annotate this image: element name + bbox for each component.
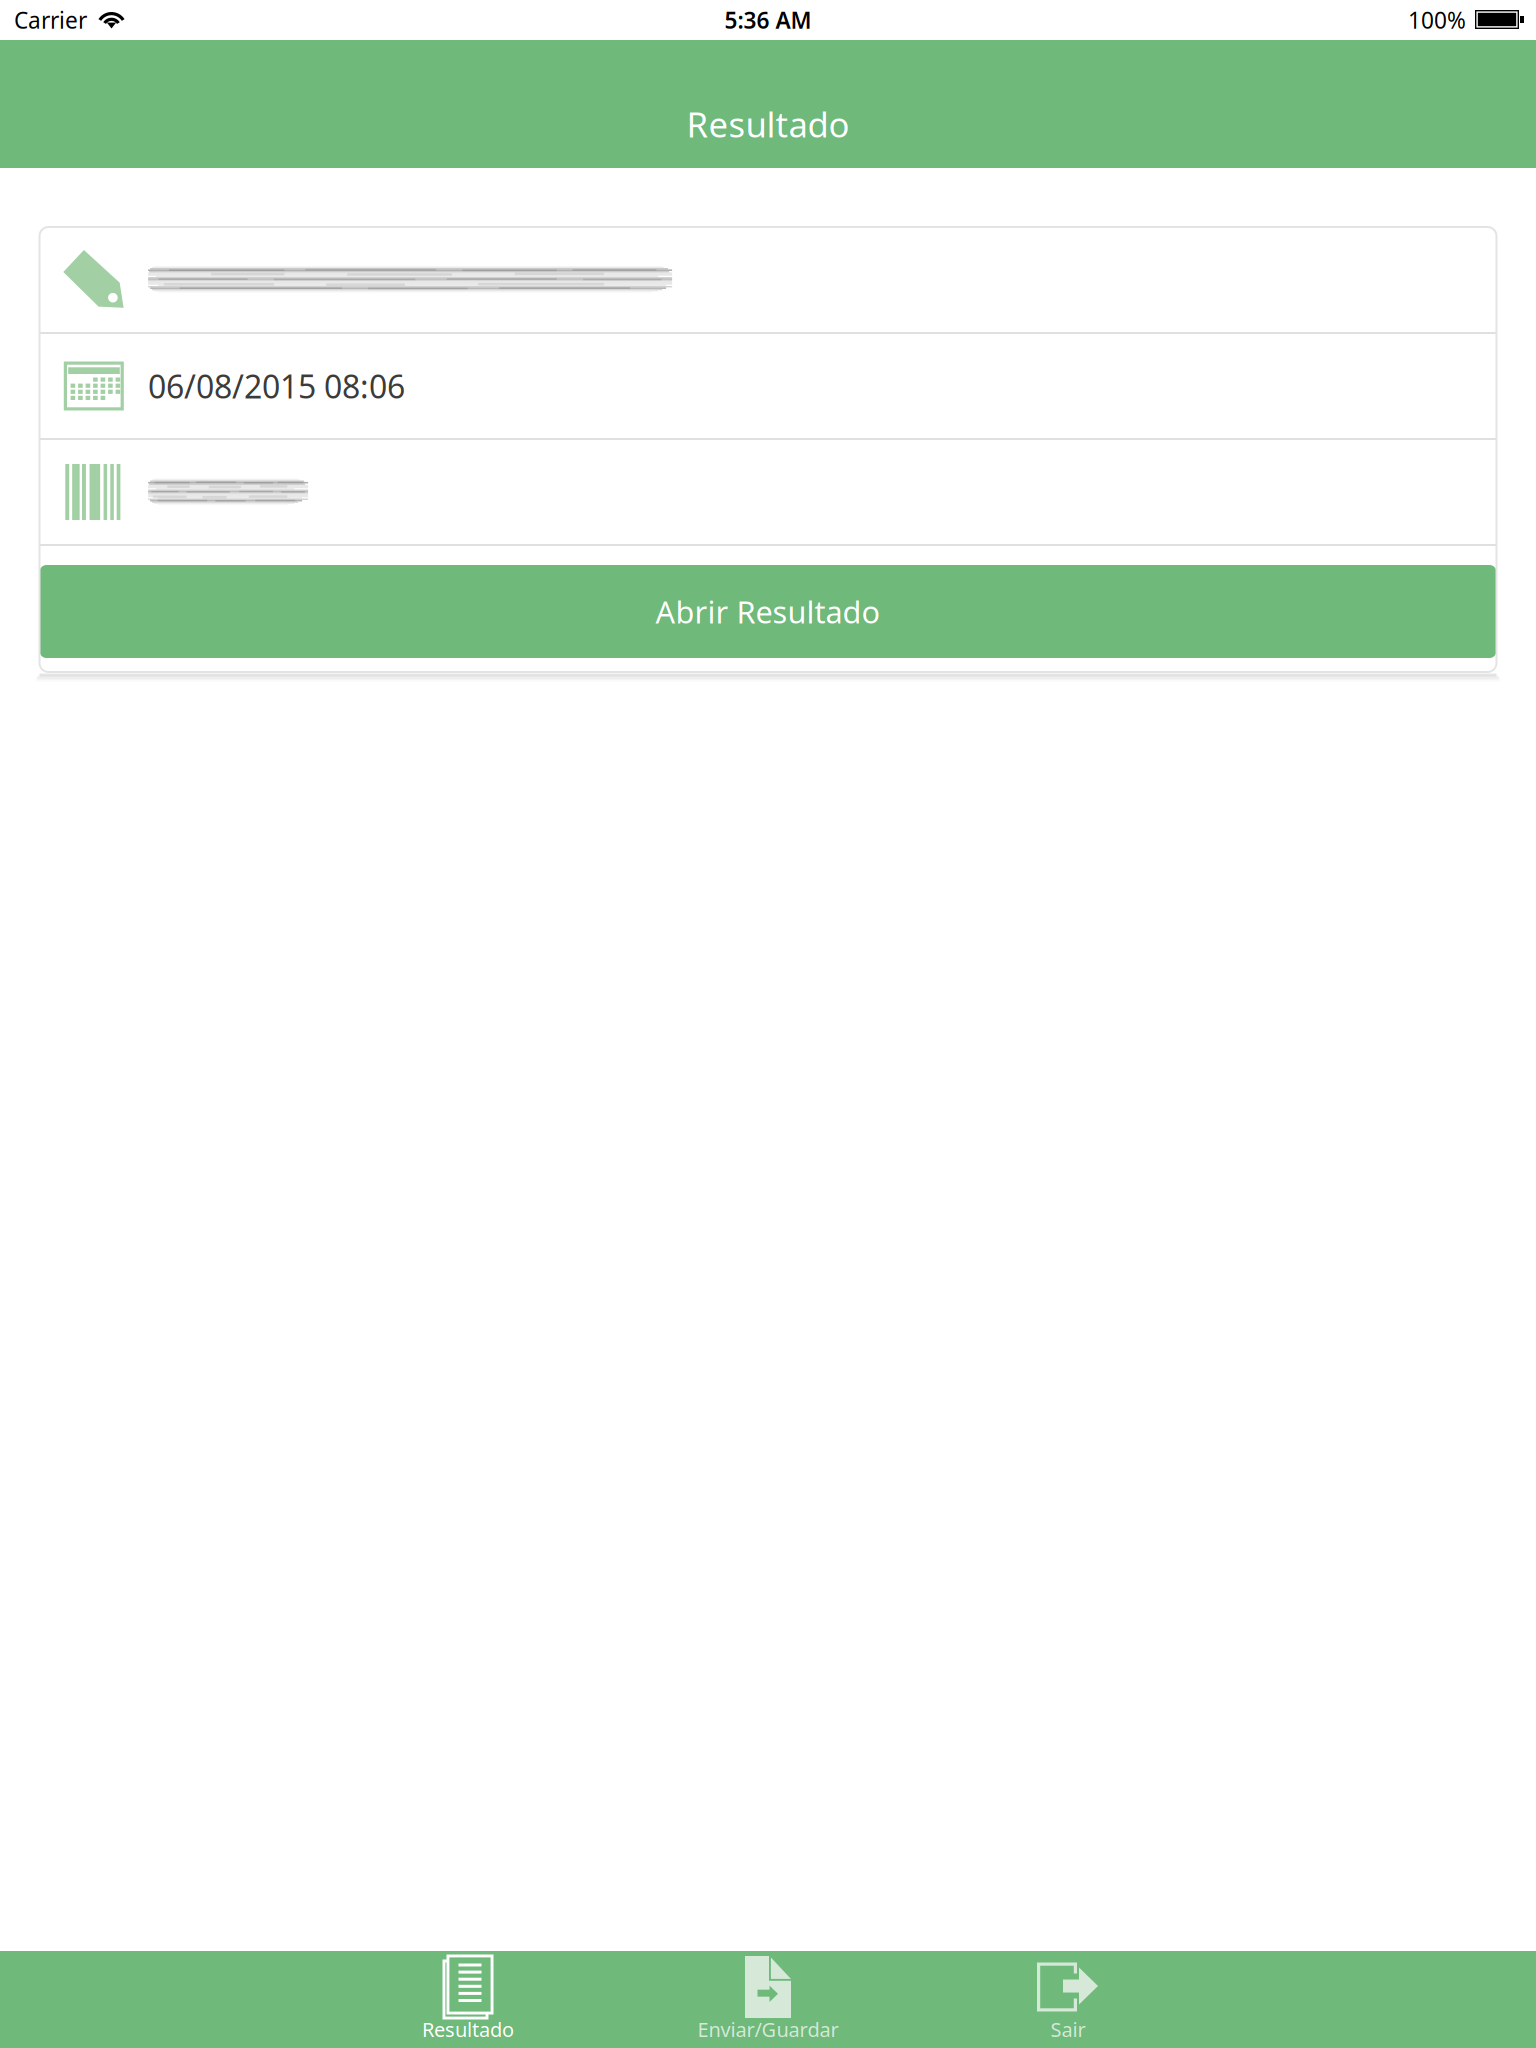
staticText: Resultado [686,101,849,147]
staticText: 06/08/2015 08:06 [148,365,405,407]
staticText: Sair [1050,2016,1085,2043]
staticText: Enviar/Guardar [697,2016,838,2043]
staticText: 5:36 AM [724,5,811,35]
button[interactable]: Enviar/Guardar [618,1951,918,2048]
staticText: Carrier [14,5,87,35]
staticText: Resultado [422,2016,514,2043]
button[interactable]: Sair [918,1951,1218,2048]
staticText: 100% [1408,5,1466,35]
staticText: Abrir Resultado [655,591,880,632]
button[interactable]: Abrir Resultado [39,565,1496,658]
button[interactable]: Nome do exame [39,227,1496,332]
button[interactable]: Código de barras [39,440,1496,544]
button[interactable]: Resultado [318,1951,618,2048]
button[interactable]: Data [39,334,1496,438]
